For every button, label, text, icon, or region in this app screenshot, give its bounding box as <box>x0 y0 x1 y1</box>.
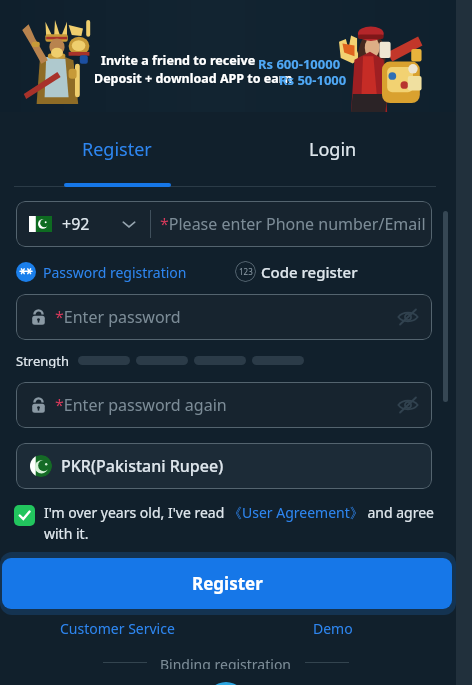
button[interactable]: 123 <box>235 261 358 282</box>
staticText: +92 <box>62 213 90 235</box>
staticText: Invite a friend to receive <box>101 52 256 69</box>
button[interactable]: Demo <box>236 617 430 639</box>
button[interactable]: Show password <box>396 393 420 417</box>
button[interactable]: Telegram login <box>206 682 246 685</box>
staticText: PKR(Pakistani Rupee) <box>61 455 224 477</box>
button[interactable]: Show password <box>396 305 420 329</box>
button[interactable]: Agree to terms <box>14 505 35 526</box>
staticText: Rs 600-10000 <box>258 55 341 73</box>
staticText: Binding registration <box>160 655 292 669</box>
staticText: I'm over years old, I've read 《User Agre… <box>44 503 444 544</box>
staticText: *Enter password again <box>55 394 227 416</box>
staticText: Deposit + download APP to earn <box>94 70 293 87</box>
button[interactable]: Register <box>20 126 214 172</box>
staticText: Password registration <box>43 263 187 282</box>
staticText: Register <box>192 572 263 595</box>
staticText: Demo <box>313 619 353 638</box>
button[interactable]: Register <box>2 558 452 609</box>
button[interactable]: Login <box>236 126 430 172</box>
staticText: Strength <box>16 352 70 368</box>
staticText: Login <box>309 137 357 162</box>
button[interactable]: Customer Service <box>20 617 214 639</box>
button[interactable]: +92 <box>16 201 150 247</box>
staticText: Rs 50-1000 <box>279 71 347 89</box>
button[interactable]: PKR(Pakistani Rupee) <box>16 443 432 489</box>
staticText: *Please enter Phone number/Email <box>160 213 426 235</box>
staticText: 123 <box>239 266 253 277</box>
staticText: Register <box>82 137 152 162</box>
button[interactable]: Password registration <box>16 262 187 282</box>
staticText: *Enter password <box>55 306 181 328</box>
staticText: Code register <box>261 262 358 282</box>
staticText: Customer Service <box>60 619 175 638</box>
